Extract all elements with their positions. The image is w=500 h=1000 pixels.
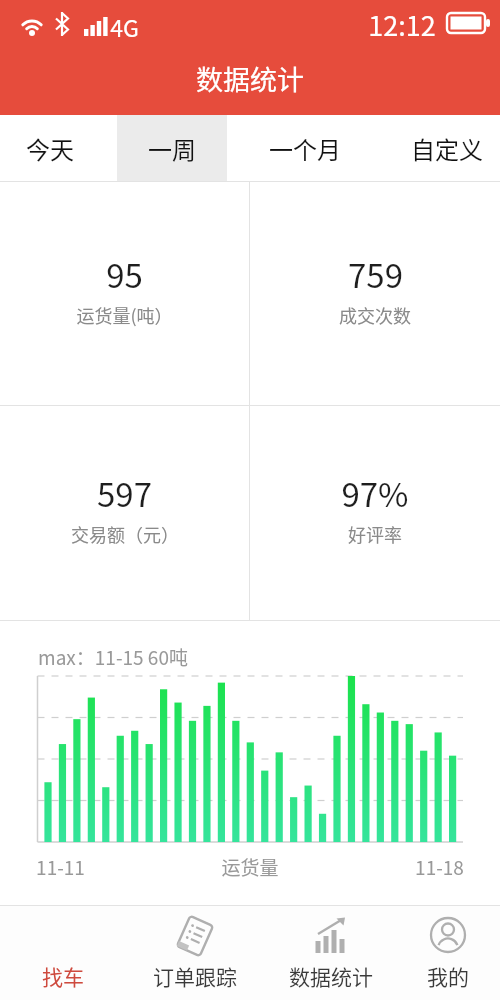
staticText: 数据统计 xyxy=(196,59,304,98)
staticText: 4G xyxy=(110,10,139,43)
staticText: 找车 xyxy=(42,961,84,991)
staticText: 好评率 xyxy=(348,521,402,547)
button[interactable]: 一个月 xyxy=(250,115,360,181)
staticText: 一个月 xyxy=(269,131,341,166)
button[interactable]: 自定义 xyxy=(392,115,500,181)
staticText: 97% xyxy=(341,469,409,517)
staticText: 一周 xyxy=(148,131,196,166)
staticText: 我的 xyxy=(427,961,469,991)
button[interactable]: 一周 xyxy=(117,115,227,181)
staticText: 订单跟踪 xyxy=(153,961,237,991)
staticText: 成交次数 xyxy=(339,302,411,328)
button[interactable]: 我的 xyxy=(378,906,500,1000)
button[interactable]: 数据统计 xyxy=(261,906,401,1000)
staticText: 运货量 xyxy=(221,853,279,881)
staticText: 运货量(吨） xyxy=(76,302,173,328)
staticText: 12:12 xyxy=(368,5,436,44)
staticText: 597 xyxy=(97,469,152,517)
staticText: 交易额（元） xyxy=(71,521,179,547)
staticText: 11-18 xyxy=(415,853,464,881)
button[interactable]: 找车 xyxy=(0,906,133,1000)
staticText: 自定义 xyxy=(411,131,483,166)
staticText: 759 xyxy=(348,250,403,298)
staticText: 数据统计 xyxy=(289,961,373,991)
staticText: max：11-15 60吨 xyxy=(38,643,188,671)
button[interactable]: 订单跟踪 xyxy=(125,906,265,1000)
staticText: 11-11 xyxy=(36,853,85,881)
staticText: 95 xyxy=(106,250,143,298)
staticText: 今天 xyxy=(26,131,74,166)
button[interactable]: 今天 xyxy=(0,115,105,181)
